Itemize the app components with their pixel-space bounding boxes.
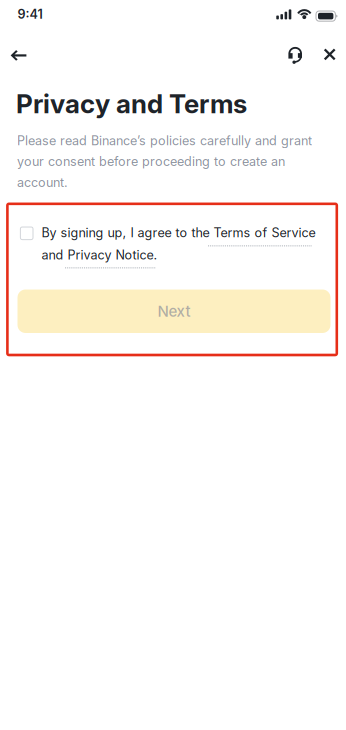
button[interactable]: By signing up, I agree to the Terms of S… <box>0 0 346 730</box>
staticText: and Privacy Notice. <box>41 247 157 263</box>
button[interactable]: Close <box>0 0 346 730</box>
staticText: Please read Binance’s policies carefully… <box>17 133 312 190</box>
staticText: By signing up, I agree to the Terms of S… <box>41 225 315 240</box>
staticText: Privacy and Terms <box>16 88 247 119</box>
staticText: Next <box>157 302 190 320</box>
button[interactable]: Back <box>0 0 346 730</box>
button[interactable]: Next <box>0 0 346 730</box>
button[interactable]: Customer support <box>0 0 346 730</box>
staticText: 9:41 <box>18 7 43 22</box>
